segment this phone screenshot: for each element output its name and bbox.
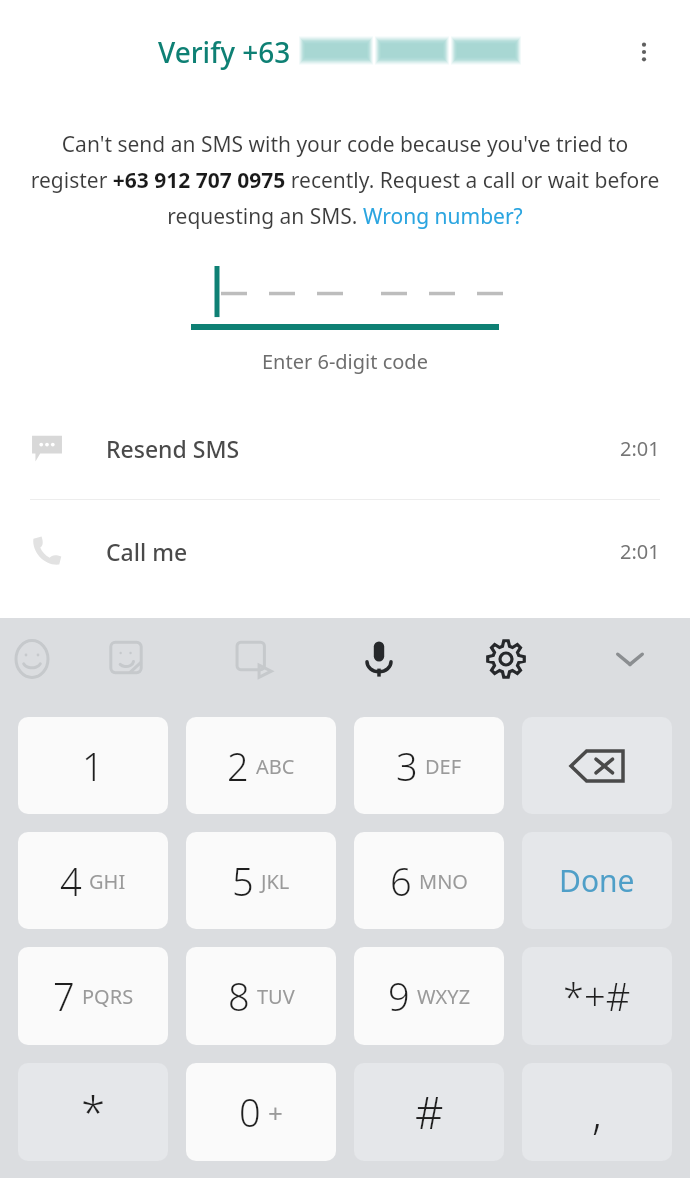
button[interactable]	[191, 254, 499, 330]
button[interactable]: 2	[186, 717, 336, 814]
staticText: JKL	[261, 868, 290, 895]
button[interactable]: 0	[186, 1063, 336, 1161]
staticText: 2:01	[620, 435, 660, 462]
staticText: 0	[239, 1086, 261, 1138]
staticText: 3	[396, 740, 418, 792]
staticText: GHI	[89, 868, 126, 895]
staticText: *	[81, 1082, 106, 1142]
staticText: 8	[228, 970, 250, 1022]
button[interactable]: Can't send an SMS with your code because…	[26, 130, 664, 230]
button[interactable]: #	[354, 1063, 504, 1161]
staticText: 7	[53, 970, 75, 1022]
button[interactable]: Resend SMS	[0, 397, 690, 499]
staticText: Enter 6-digit code	[262, 348, 428, 375]
staticText: 2:01	[620, 538, 660, 565]
staticText: #	[415, 1082, 444, 1142]
button[interactable]: Stickers	[63, 618, 189, 700]
staticText: ,	[592, 1082, 602, 1142]
button[interactable]: 5	[186, 832, 336, 929]
staticText: Resend SMS	[106, 433, 240, 464]
button[interactable]: Backspace	[522, 717, 672, 814]
button[interactable]: Emoji	[0, 618, 63, 700]
staticText: Verify +63	[158, 33, 291, 71]
button[interactable]: 8	[186, 947, 336, 1045]
staticText: DEF	[425, 753, 462, 780]
button[interactable]: *+#	[522, 947, 672, 1045]
staticText: WXYZ	[417, 983, 471, 1010]
button[interactable]: 7	[18, 947, 168, 1045]
staticText: +	[268, 1095, 283, 1130]
button[interactable]: Done	[522, 832, 672, 929]
staticText: 5	[232, 855, 254, 907]
button[interactable]: 9	[354, 947, 504, 1045]
staticText: ABC	[256, 753, 295, 780]
button[interactable]: Hide keyboard	[569, 618, 690, 700]
button[interactable]: 6	[354, 832, 504, 929]
button[interactable]: More options	[620, 28, 668, 76]
staticText: 2	[227, 740, 249, 792]
staticText: Can't send an SMS with your code because…	[26, 130, 664, 230]
staticText: *+#	[563, 970, 631, 1022]
staticText: 9	[388, 970, 410, 1022]
staticText: PQRS	[82, 983, 134, 1010]
staticText: TUV	[257, 983, 295, 1010]
staticText: Call me	[106, 536, 188, 567]
button[interactable]: ,	[522, 1063, 672, 1161]
button[interactable]: 4	[18, 832, 168, 929]
button[interactable]: Settings	[442, 618, 569, 700]
button[interactable]: 1	[18, 717, 168, 814]
staticText: Done	[559, 860, 635, 901]
staticText: 1	[82, 740, 104, 792]
staticText: MNO	[419, 868, 468, 895]
button[interactable]: Voice input	[316, 618, 442, 700]
button[interactable]: 3	[354, 717, 504, 814]
button[interactable]: GIF	[189, 618, 316, 700]
staticText: 6	[390, 855, 412, 907]
staticText: 4	[60, 855, 82, 907]
button[interactable]: Call me	[0, 500, 690, 602]
button[interactable]: *	[18, 1063, 168, 1161]
